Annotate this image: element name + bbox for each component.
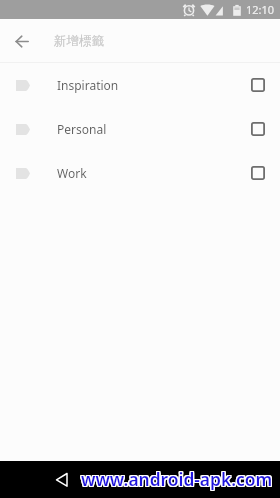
staticText: www.android-apk.com: [81, 466, 273, 490]
button[interactable]: Select label Inspiration: [251, 78, 265, 92]
staticText: www.android-apk.com: [82, 468, 274, 492]
button[interactable]: Personal: [0, 107, 280, 151]
staticText: Personal: [57, 121, 107, 137]
staticText: 12:10: [246, 2, 275, 17]
button[interactable]: Select label Work: [251, 166, 265, 180]
staticText: www.android-apk.com: [80, 466, 272, 490]
button[interactable]: Work: [0, 151, 280, 195]
staticText: 新增標籤: [54, 33, 104, 49]
staticText: www.android-apk.com: [80, 468, 272, 492]
staticText: Inspiration: [57, 77, 119, 93]
button[interactable]: Back: [10, 27, 38, 55]
staticText: www.android-apk.com: [80, 467, 272, 491]
staticText: Work: [57, 165, 87, 181]
staticText: www.android-apk.com: [81, 467, 273, 491]
button[interactable]: Inspiration: [0, 63, 280, 107]
staticText: www.android-apk.com: [82, 466, 274, 490]
button[interactable]: Back: [54, 472, 70, 488]
staticText: www.android-apk.com: [81, 468, 273, 492]
staticText: www.android-apk.com: [82, 467, 274, 491]
button[interactable]: Select label Personal: [251, 122, 265, 136]
